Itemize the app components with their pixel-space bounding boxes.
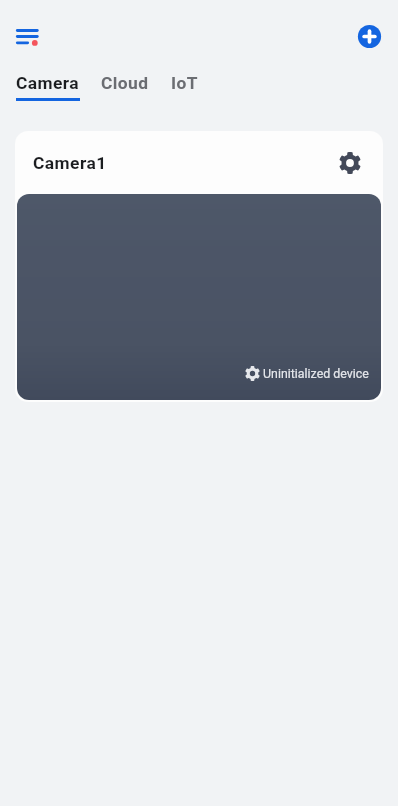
button[interactable]: Camera: [16, 73, 80, 101]
button[interactable]: Camera settings: [333, 146, 367, 180]
button[interactable]: Uninitialized device: [17, 194, 381, 400]
staticText: Camera: [16, 73, 80, 93]
staticText: Uninitialized device: [263, 366, 369, 381]
button[interactable]: Menu: [6, 15, 49, 58]
button[interactable]: Cloud: [101, 73, 149, 101]
button[interactable]: Add device: [349, 16, 390, 57]
staticText: Camera1: [33, 153, 107, 173]
button[interactable]: IoT: [171, 73, 198, 101]
staticText: IoT: [171, 73, 198, 93]
staticText: Cloud: [101, 73, 149, 93]
